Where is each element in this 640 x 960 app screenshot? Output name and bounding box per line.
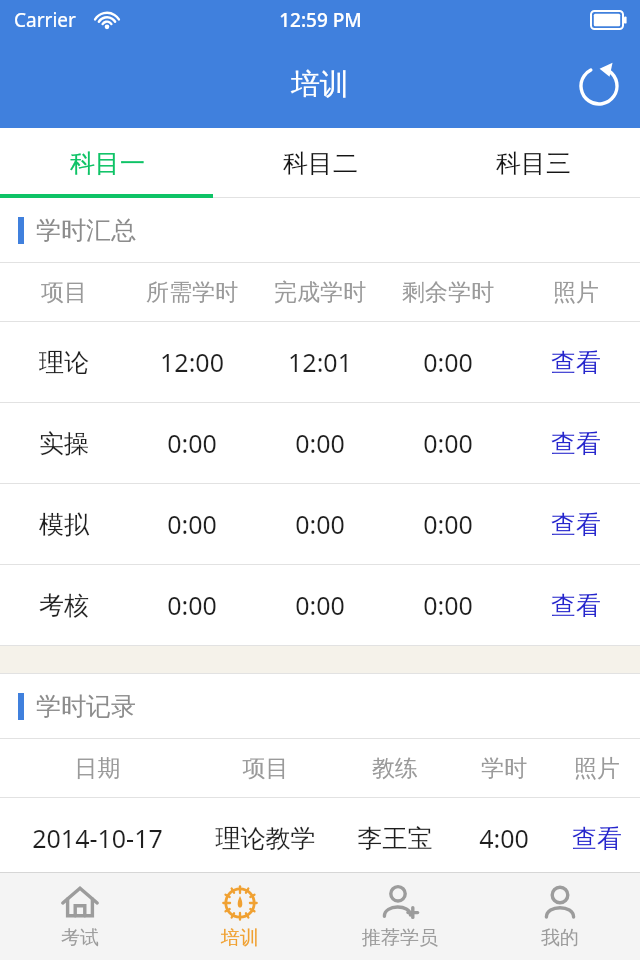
staticText: 考试 — [61, 926, 99, 950]
staticText: 项目 — [195, 754, 336, 783]
staticText: 剩余学时 — [384, 278, 512, 307]
staticText: 查看 — [512, 428, 640, 459]
staticText: 日期 — [0, 754, 195, 783]
staticText: 我的 — [541, 926, 579, 950]
button[interactable]: 考核 — [0, 565, 640, 645]
staticText: 2014-10-17 — [0, 821, 195, 855]
staticText: 学时记录 — [36, 691, 136, 722]
staticText: 12:00 — [128, 345, 256, 379]
staticText: 科目二 — [283, 148, 358, 179]
staticText: 实操 — [0, 428, 128, 459]
button[interactable]: 考试 — [0, 873, 160, 960]
staticText: 教练 — [336, 754, 454, 783]
button[interactable]: 培训 — [160, 873, 320, 960]
button[interactable]: 我的 — [480, 873, 640, 960]
staticText: 查看 — [554, 823, 640, 854]
staticText: 推荐学员 — [362, 926, 438, 950]
staticText: 完成学时 — [256, 278, 384, 307]
staticText: Carrier — [14, 7, 76, 33]
staticText: 0:00 — [256, 426, 384, 460]
button[interactable]: 2014-10-17 — [0, 798, 640, 878]
staticText: 12:59 PM — [279, 7, 362, 33]
staticText: 学时 — [454, 754, 554, 783]
staticText: 理论 — [0, 347, 128, 378]
button[interactable]: 推荐学员 — [320, 873, 480, 960]
button[interactable]: 科目三 — [427, 128, 640, 198]
staticText: 学时汇总 — [36, 215, 136, 246]
staticText: 培训 — [291, 66, 349, 103]
staticText: 0:00 — [256, 507, 384, 541]
button[interactable]: 理论 — [0, 322, 640, 402]
staticText: 查看 — [512, 590, 640, 621]
staticText: 科目一 — [70, 148, 145, 179]
staticText: 查看 — [512, 509, 640, 540]
button[interactable]: 科目一 — [0, 128, 214, 198]
staticText: 培训 — [221, 926, 259, 950]
staticText: 0:00 — [384, 588, 512, 622]
button[interactable]: Refresh — [570, 55, 628, 113]
staticText: 查看 — [512, 347, 640, 378]
staticText: 0:00 — [128, 588, 256, 622]
staticText: 0:00 — [128, 507, 256, 541]
button[interactable]: 实操 — [0, 403, 640, 483]
staticText: 李王宝 — [336, 823, 454, 854]
staticText: 项目 — [0, 278, 128, 307]
staticText: 4:00 — [454, 821, 554, 855]
staticText: 考核 — [0, 590, 128, 621]
staticText: 0:00 — [384, 507, 512, 541]
staticText: 照片 — [512, 278, 640, 307]
staticText: 所需学时 — [128, 278, 256, 307]
staticText: 0:00 — [128, 426, 256, 460]
staticText: 0:00 — [384, 426, 512, 460]
button[interactable]: 模拟 — [0, 484, 640, 564]
staticText: 理论教学 — [195, 823, 336, 854]
staticText: 12:01 — [256, 345, 384, 379]
staticText: 0:00 — [256, 588, 384, 622]
staticText: 照片 — [554, 754, 640, 783]
staticText: 0:00 — [384, 345, 512, 379]
staticText: 科目三 — [496, 148, 571, 179]
button[interactable]: 科目二 — [214, 128, 427, 198]
staticText: 模拟 — [0, 509, 128, 540]
